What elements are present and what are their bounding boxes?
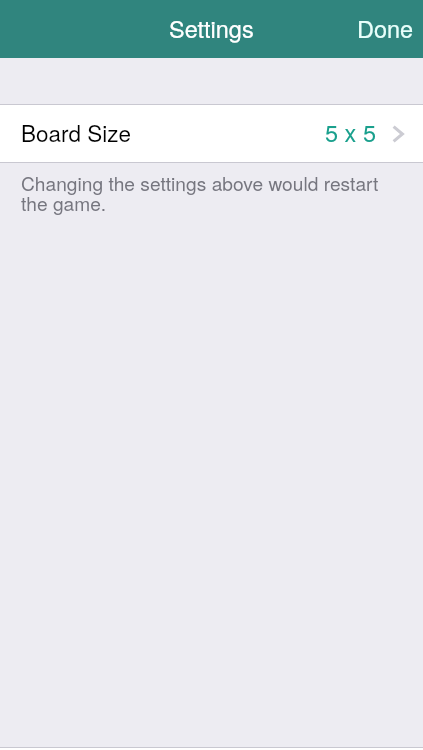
staticText: Settings bbox=[169, 11, 254, 45]
staticText: Changing the settings above would restar… bbox=[21, 175, 402, 215]
staticText: Done bbox=[357, 11, 414, 45]
staticText: 5 x 5 bbox=[325, 115, 376, 149]
button[interactable]: Board Size bbox=[0, 105, 423, 162]
staticText: Board Size bbox=[21, 116, 132, 148]
other: Open board size chooser bbox=[392, 125, 404, 143]
button[interactable]: Done bbox=[348, 0, 423, 58]
